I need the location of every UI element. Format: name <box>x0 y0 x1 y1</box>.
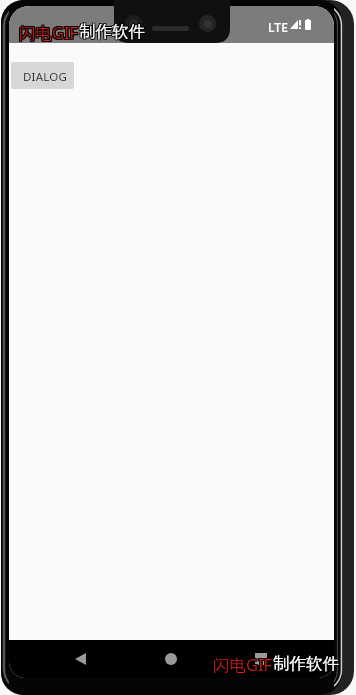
staticText: 制作软件 <box>274 652 340 673</box>
staticText: 制作软件 <box>272 652 338 673</box>
staticText: 闪电GIF <box>213 653 273 676</box>
staticText: 闪电GIF <box>214 652 274 675</box>
staticText: 闪电GIF <box>213 654 273 677</box>
staticText: 制作软件 <box>272 654 338 675</box>
staticText: 闪电GIF <box>212 652 272 675</box>
staticText: 闪电GIF <box>20 22 80 45</box>
staticText: 闪电GIF <box>19 22 79 45</box>
staticText: 制作软件 <box>273 652 339 673</box>
staticText: LTE <box>268 19 289 35</box>
staticText: 闪电GIF <box>214 653 274 676</box>
staticText: 制作软件 <box>80 22 146 43</box>
staticText: 制作软件 <box>274 653 340 674</box>
staticText: 闪电GIF <box>212 653 272 676</box>
staticText: 制作软件 <box>80 20 146 41</box>
staticText: 制作软件 <box>272 653 338 674</box>
staticText: 闪电GIF <box>19 20 79 43</box>
staticText: 闪电GIF <box>20 20 80 43</box>
staticText: 闪电GIF <box>18 20 78 43</box>
staticText: 制作软件 <box>80 21 146 42</box>
staticText: 制作软件 <box>79 22 145 43</box>
staticText: 制作软件 <box>273 653 339 674</box>
staticText: 闪电GIF <box>18 21 78 44</box>
staticText: 制作软件 <box>78 20 144 41</box>
staticText: DIALOG <box>23 69 67 85</box>
staticText: 闪电GIF <box>213 652 273 675</box>
staticText: 闪电GIF <box>18 22 78 45</box>
button[interactable]: Back <box>68 647 92 671</box>
staticText: 制作软件 <box>78 22 144 43</box>
staticText: 闪电GIF <box>212 654 272 677</box>
staticText: 制作软件 <box>273 654 339 675</box>
staticText: 制作软件 <box>78 21 144 42</box>
staticText: 闪电GIF <box>214 654 274 677</box>
staticText: 制作软件 <box>79 21 145 42</box>
button[interactable]: Recents <box>249 647 273 671</box>
button[interactable]: DIALOG <box>11 62 74 89</box>
staticText: 制作软件 <box>79 20 145 41</box>
staticText: 闪电GIF <box>20 21 80 44</box>
staticText: 制作软件 <box>274 654 340 675</box>
button[interactable]: Home <box>159 647 183 671</box>
staticText: 闪电GIF <box>19 21 79 44</box>
